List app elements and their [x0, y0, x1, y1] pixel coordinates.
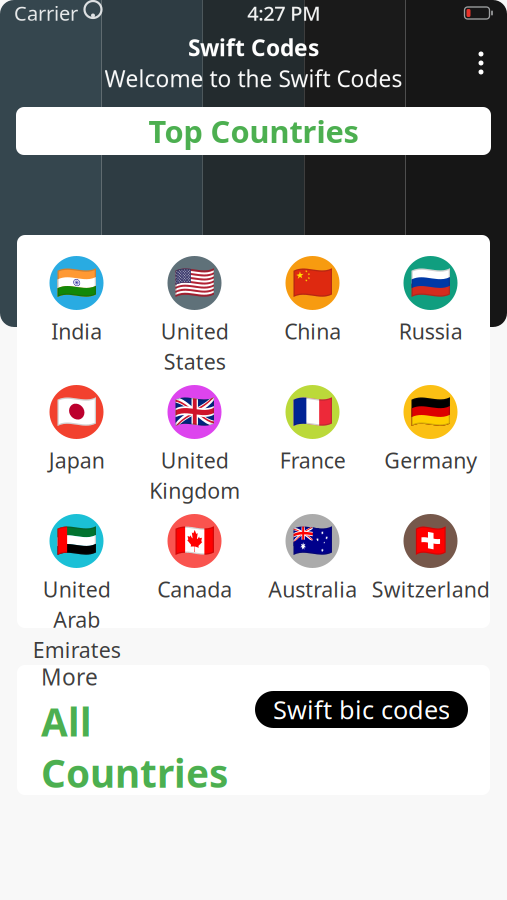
staticText: Swift bic codes	[273, 693, 450, 726]
button[interactable]: 🇷🇺	[371, 256, 489, 363]
staticText: France	[279, 446, 345, 474]
button[interactable]: 🇫🇷	[253, 385, 371, 492]
staticText: Swift Codes	[188, 32, 319, 62]
staticText: United States	[160, 317, 228, 376]
staticText: Germany	[384, 446, 477, 474]
staticText: 🇨🇭	[409, 522, 451, 560]
staticText: All Countries	[41, 696, 228, 798]
button[interactable]: More	[17, 665, 490, 795]
staticText: Top Countries	[148, 111, 358, 151]
staticText: 🇷🇺	[409, 264, 451, 302]
staticText: 🇦🇺	[291, 522, 333, 560]
button[interactable]: 🇨🇦	[135, 514, 253, 621]
button[interactable]: 🇯🇵	[17, 385, 135, 492]
staticText: 4:27 PM	[247, 0, 320, 26]
button[interactable]: 🇦🇺	[253, 514, 371, 621]
button[interactable]: 🇮🇳	[17, 256, 135, 363]
staticText: Switzerland	[371, 575, 489, 603]
button[interactable]: Top Countries	[16, 107, 491, 155]
staticText: Russia	[398, 317, 462, 345]
button[interactable]: 🇬🇧	[135, 385, 253, 492]
button[interactable]: More options	[459, 41, 503, 85]
button[interactable]: 🇺🇸	[135, 256, 253, 363]
staticText: Japan	[48, 446, 104, 474]
staticText: United Kingdom	[149, 446, 240, 505]
staticText: 🇮🇳	[55, 264, 97, 302]
staticText: India	[51, 317, 102, 345]
button[interactable]: 🇦🇪	[17, 514, 135, 621]
staticText: 🇺🇸	[173, 264, 215, 302]
staticText: 🇨🇦	[173, 522, 215, 560]
button[interactable]: 🇨🇳	[253, 256, 371, 363]
staticText: 🇬🇧	[173, 393, 215, 431]
button[interactable]: 🇩🇪	[371, 385, 489, 492]
button[interactable]: 🇨🇭	[371, 514, 489, 621]
staticText: United Arab Emirates	[32, 575, 120, 664]
staticText: 🇨🇳	[291, 264, 333, 302]
staticText: 🇫🇷	[291, 393, 333, 431]
staticText: Australia	[268, 575, 357, 603]
staticText: China	[284, 317, 341, 345]
staticText: 🇯🇵	[55, 393, 97, 431]
staticText: More	[41, 662, 98, 692]
staticText: Welcome to the Swift Codes	[104, 63, 402, 94]
staticText: Carrier	[14, 0, 78, 26]
staticText: 🇦🇪	[55, 522, 97, 560]
staticText: 🇩🇪	[409, 393, 451, 431]
staticText: Canada	[157, 575, 232, 603]
